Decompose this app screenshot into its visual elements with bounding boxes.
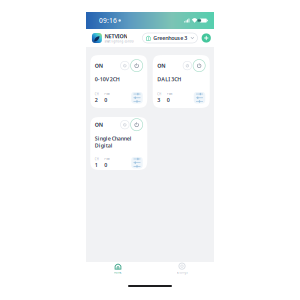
staticText: 0: [167, 96, 170, 103]
staticText: ON: [157, 62, 165, 69]
staticText: 2: [95, 96, 98, 103]
staticText: Settings: [176, 271, 187, 274]
staticText: PWR: [104, 157, 110, 161]
staticText: CH: [95, 157, 99, 161]
staticText: PWR: [104, 92, 110, 96]
staticText: smart lighting control: [104, 40, 134, 43]
button[interactable]: ON: [90, 117, 147, 170]
staticText: ON: [95, 121, 103, 128]
staticText: CH: [95, 92, 99, 96]
staticText: Greenhouse 3: [153, 34, 187, 42]
button[interactable]: Settings: [150, 260, 214, 277]
staticText: NETVION: [104, 33, 127, 40]
staticText: PWR: [167, 92, 173, 96]
staticText: Home: [114, 271, 122, 274]
staticText: 1: [95, 161, 98, 168]
staticText: 0-10V 2CH: [95, 76, 120, 83]
staticText: ON: [95, 62, 103, 69]
button[interactable]: ON: [153, 55, 210, 108]
button[interactable]: ON: [90, 55, 147, 108]
staticText: 0: [104, 161, 107, 168]
staticText: 3: [157, 96, 160, 103]
button[interactable]: Greenhouse 3: [142, 33, 197, 43]
staticText: DALI 3CH: [157, 76, 181, 83]
button[interactable]: Home: [86, 260, 150, 277]
staticText: 0: [104, 96, 107, 103]
staticText: Single Channel Digital: [95, 135, 132, 149]
staticText: CH: [157, 92, 161, 96]
button[interactable]: Add device: [201, 33, 211, 43]
staticText: 09:16: [99, 16, 117, 25]
